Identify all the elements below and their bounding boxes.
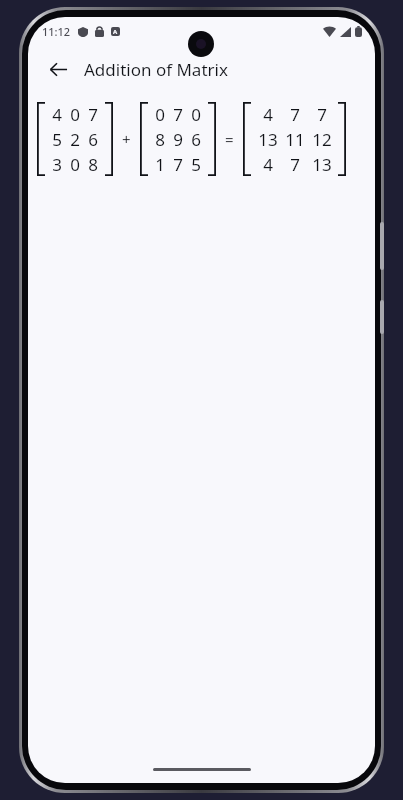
staticText: 0 bbox=[70, 103, 80, 126]
staticText: 7 bbox=[88, 103, 98, 126]
staticText: 7 bbox=[290, 153, 300, 176]
staticText: 0 bbox=[155, 103, 165, 126]
staticText: 11 bbox=[285, 128, 305, 151]
staticText: Addition of Matrix bbox=[84, 58, 228, 81]
staticText: 9 bbox=[173, 128, 183, 151]
staticText: 8 bbox=[155, 128, 165, 151]
staticText: 11:12 bbox=[42, 24, 71, 39]
staticText: 7 bbox=[173, 153, 183, 176]
staticText: = bbox=[225, 129, 234, 149]
staticText: 1 bbox=[155, 153, 165, 176]
staticText: 3 bbox=[52, 153, 62, 176]
staticText: 6 bbox=[88, 128, 98, 151]
staticText: 2 bbox=[70, 128, 80, 151]
staticText: 4 bbox=[263, 153, 273, 176]
staticText: + bbox=[122, 129, 131, 149]
staticText: 13 bbox=[312, 153, 332, 176]
staticText: 7 bbox=[317, 103, 327, 126]
staticText: 12 bbox=[312, 128, 332, 151]
staticText: 7 bbox=[290, 103, 300, 126]
staticText: A bbox=[113, 28, 118, 36]
staticText: 5 bbox=[191, 153, 201, 176]
staticText: 4 bbox=[52, 103, 62, 126]
staticText: 7 bbox=[173, 103, 183, 126]
staticText: 4 bbox=[263, 103, 273, 126]
staticText: 13 bbox=[258, 128, 278, 151]
staticText: 6 bbox=[191, 128, 201, 151]
staticText: 5 bbox=[52, 128, 62, 151]
staticText: 8 bbox=[88, 153, 98, 176]
staticText: 0 bbox=[70, 153, 80, 176]
staticText: 0 bbox=[191, 103, 201, 126]
button[interactable]: Back bbox=[40, 51, 76, 87]
